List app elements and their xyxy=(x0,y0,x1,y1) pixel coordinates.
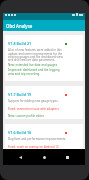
staticText: New: extended live data and gauges xyxy=(8,63,58,67)
staticText: Fixed: crash on startup on Android 12 xyxy=(8,145,59,149)
button[interactable]: Back xyxy=(15,152,26,163)
button[interactable]: V1.7 Build 19 xyxy=(5,86,83,119)
staticText: V1.6 Build 16 xyxy=(8,130,32,135)
button[interactable]: V1.6 Build 16 xyxy=(5,124,83,149)
staticText: Bug fixes and performance improvements. xyxy=(8,137,67,141)
staticText: Fixed: connection issue with adapters xyxy=(8,107,59,111)
staticText: Support for adding new gauge types. xyxy=(8,99,59,103)
button[interactable]: Obd Analyse xyxy=(3,20,85,31)
staticText: Obd Analyse xyxy=(6,23,33,29)
staticText: V1.7 Build 19 xyxy=(8,92,32,97)
button[interactable]: Recents xyxy=(62,152,73,163)
staticText: New: custom profile editor xyxy=(8,114,45,118)
staticText: A lot of new features were added in this… xyxy=(8,48,63,61)
staticText: Improved: dashboard and the logging view… xyxy=(8,68,60,75)
button[interactable]: V1.8 Build 21 xyxy=(5,35,83,81)
button[interactable]: Home xyxy=(39,152,50,163)
staticText: V1.8 Build 21 xyxy=(8,41,32,46)
